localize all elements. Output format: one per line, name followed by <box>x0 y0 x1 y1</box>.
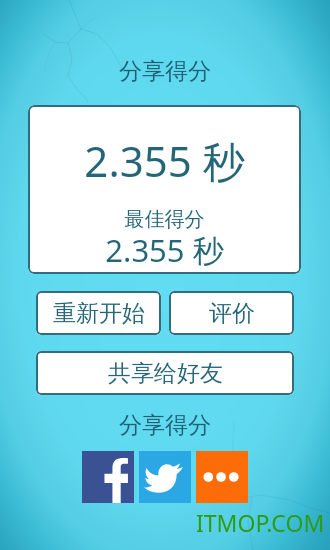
button[interactable]: 共享给好友 <box>36 351 294 395</box>
button[interactable]: Share on Facebook <box>82 451 134 503</box>
staticText: 分享得分 <box>0 411 330 440</box>
staticText: 分享得分 <box>0 57 330 86</box>
button[interactable]: 评价 <box>169 291 294 335</box>
staticText: 最佳得分 <box>28 207 301 232</box>
button[interactable]: 重新开始 <box>36 291 161 335</box>
staticText: 2.355 秒 <box>28 229 301 271</box>
staticText: 重新开始 <box>53 299 145 328</box>
button[interactable]: Share on Twitter <box>139 451 191 503</box>
staticText: 2.355 秒 <box>28 132 301 189</box>
staticText: ITMOP.COM <box>196 507 325 538</box>
staticText: 共享给好友 <box>108 359 223 388</box>
button[interactable]: More sharing options <box>196 451 248 503</box>
staticText: 评价 <box>209 299 255 328</box>
